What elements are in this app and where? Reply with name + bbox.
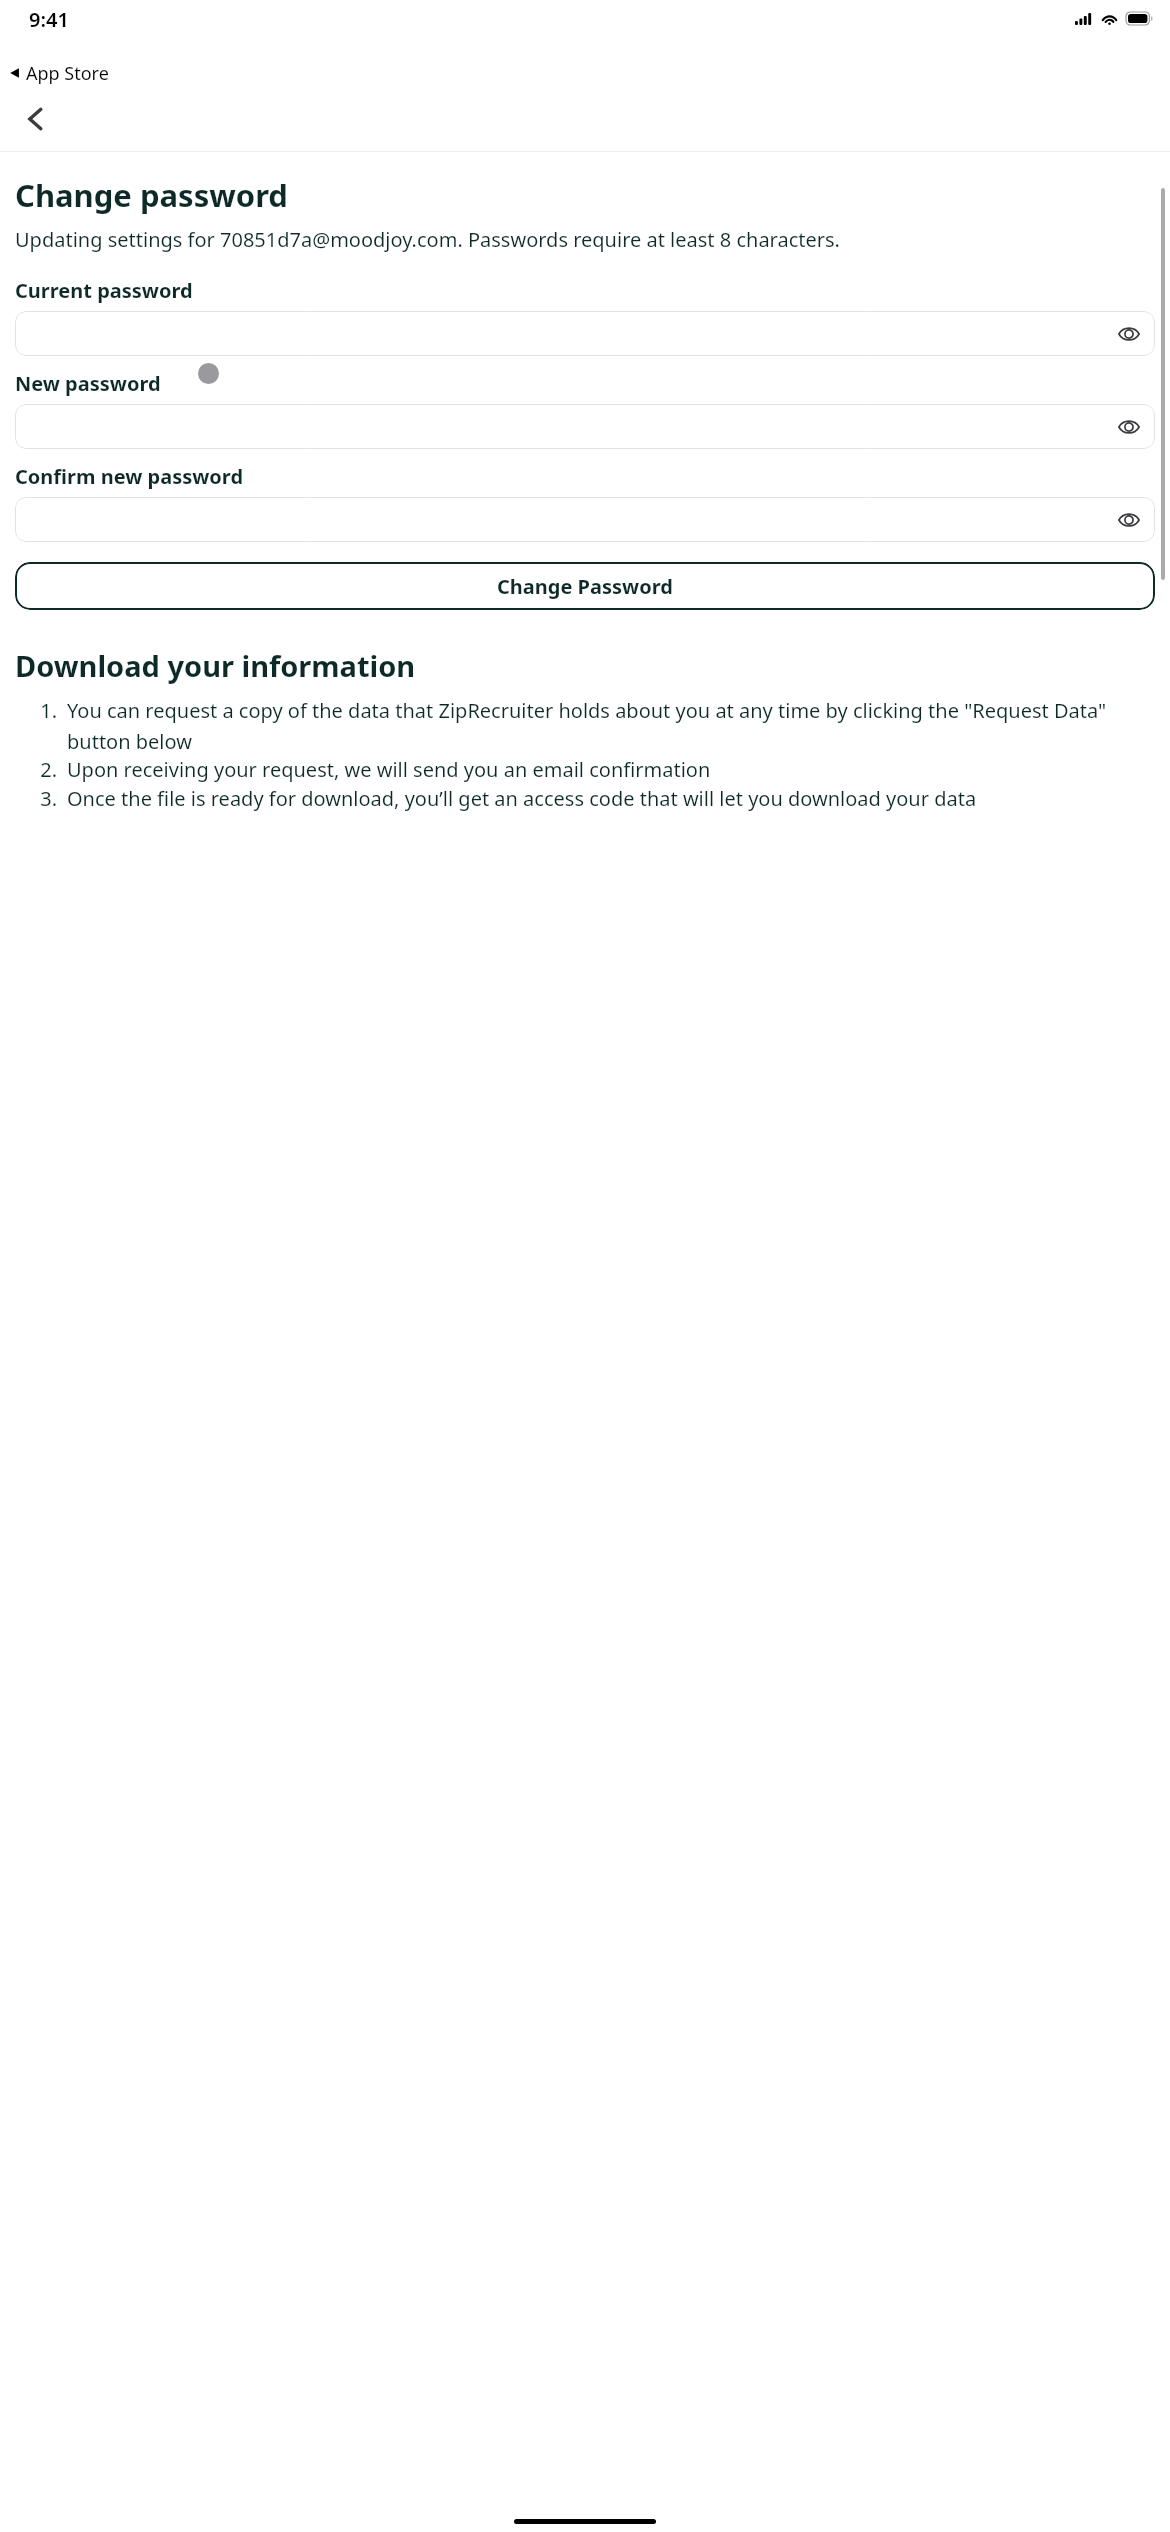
- button[interactable]: Change Password: [15, 562, 1155, 610]
- button[interactable]: Show password: [1111, 502, 1147, 538]
- staticText: Once the file is ready for download, you…: [67, 785, 977, 812]
- staticText: Current password: [15, 277, 193, 304]
- staticText: New password: [15, 370, 161, 397]
- staticText: Download your information: [15, 646, 416, 685]
- staticText: App Store: [26, 61, 109, 86]
- staticText: 2.: [29, 756, 57, 783]
- button[interactable]: Show password: [15, 311, 1155, 356]
- staticText: 9:41: [29, 6, 69, 33]
- staticText: Confirm new password: [15, 463, 244, 490]
- staticText: You can request a copy of the data that …: [67, 697, 1155, 754]
- button[interactable]: Show password: [15, 497, 1155, 542]
- staticText: Updating settings for 70851d7a@moodjoy.c…: [15, 226, 840, 253]
- button[interactable]: Show password: [15, 404, 1155, 449]
- staticText: Upon receiving your request, we will sen…: [67, 756, 711, 783]
- button[interactable]: Back: [12, 95, 60, 143]
- button[interactable]: Show password: [1111, 409, 1147, 445]
- staticText: Change password: [15, 174, 288, 216]
- staticText: Change Password: [497, 573, 673, 600]
- staticText: 1.: [29, 697, 57, 724]
- staticText: 3.: [29, 785, 57, 812]
- button[interactable]: App Store: [8, 59, 109, 87]
- button[interactable]: Show password: [1111, 316, 1147, 352]
